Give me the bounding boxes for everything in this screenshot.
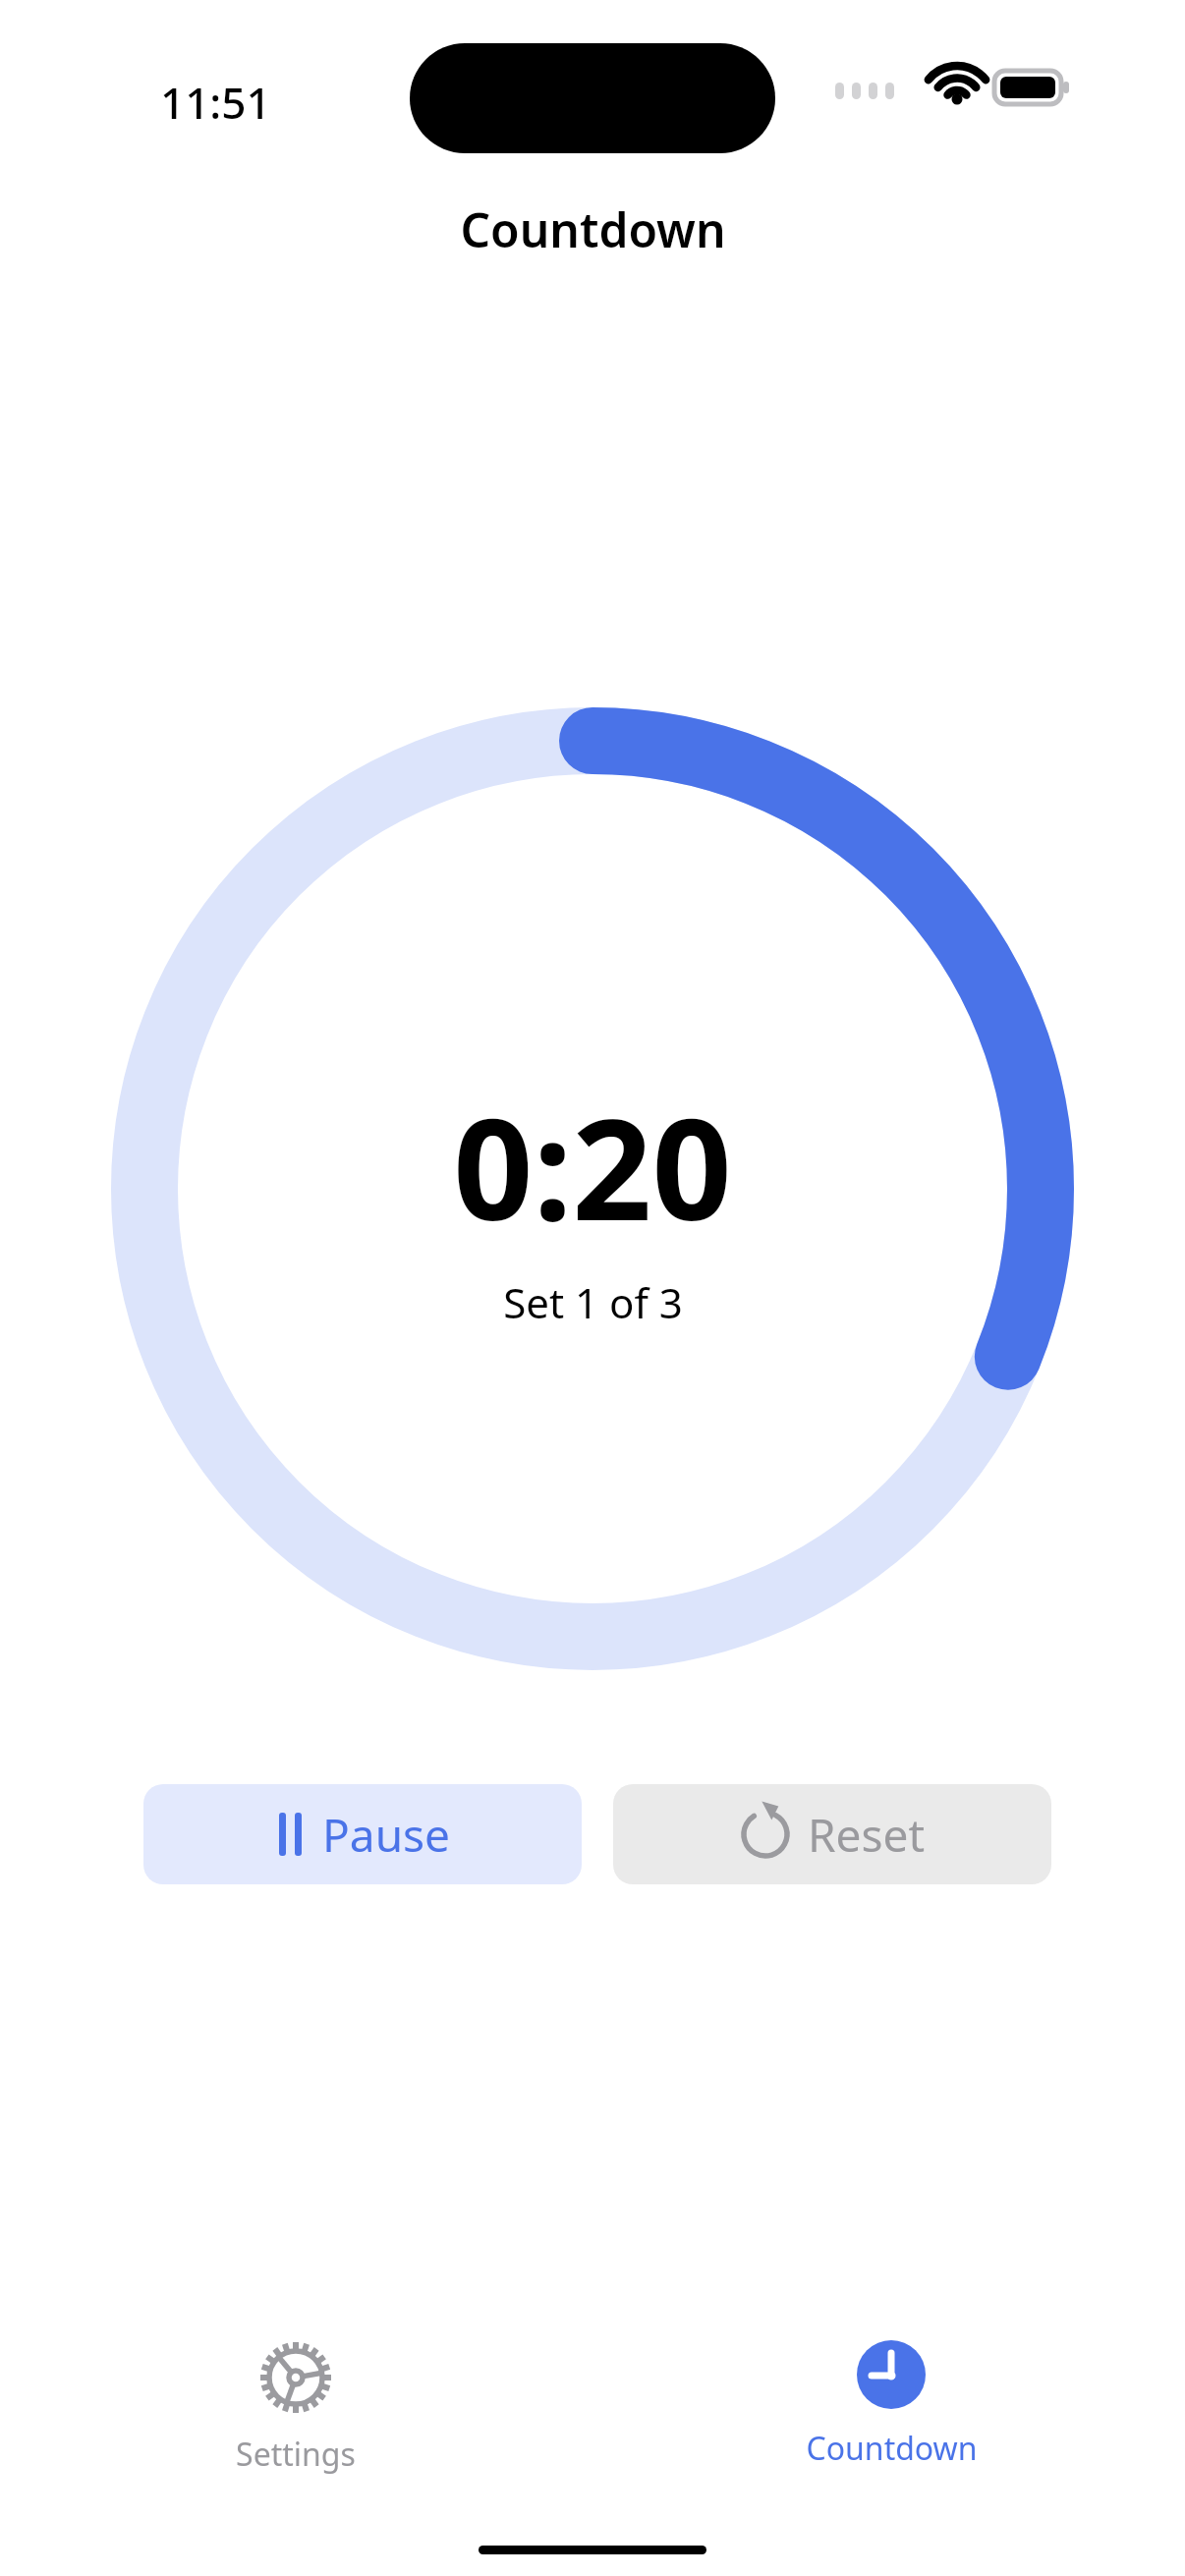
button[interactable]: Settings [148, 2340, 443, 2476]
staticText: Reset [808, 1804, 926, 1866]
button[interactable]: Countdown [744, 2340, 1039, 2470]
other: Settings [258, 2340, 333, 2415]
staticText: Settings [236, 2433, 356, 2476]
staticText: 0:20 [453, 1071, 732, 1260]
staticText: 11:51 [160, 73, 271, 132]
staticText: Set 1 of 3 [503, 1274, 683, 1330]
button[interactable]: Reset [613, 1784, 1051, 1884]
staticText: Countdown [460, 197, 726, 261]
staticText: Countdown [806, 2427, 978, 2470]
button[interactable]: Pause [143, 1784, 582, 1884]
staticText: Pause [322, 1804, 451, 1866]
